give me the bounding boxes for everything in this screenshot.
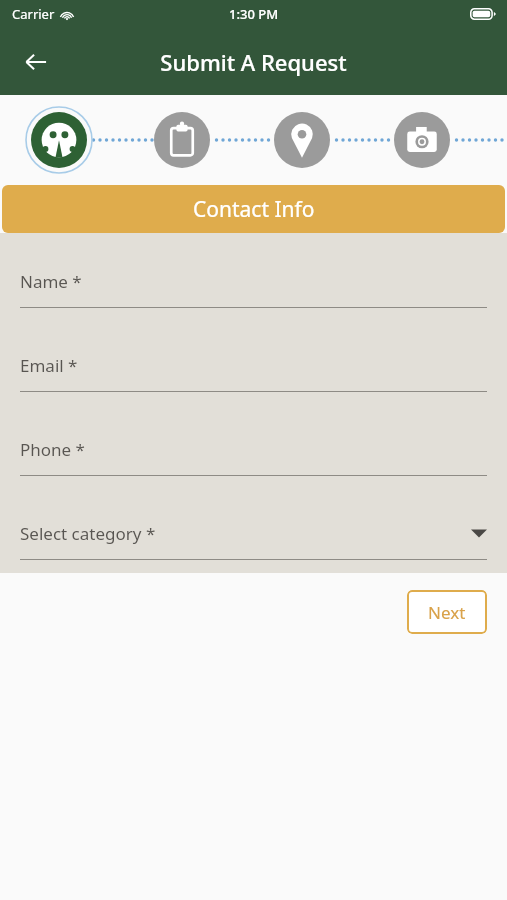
button[interactable]: Contact step <box>31 112 87 168</box>
staticText: Carrier <box>12 5 55 23</box>
staticText: Select category * <box>20 522 156 545</box>
button[interactable]: Select category * <box>20 507 487 573</box>
staticText: Name * <box>20 270 82 293</box>
staticText: Phone * <box>20 438 85 461</box>
button[interactable]: Back <box>12 38 60 86</box>
button[interactable]: Phone * <box>20 423 487 507</box>
button[interactable]: Next <box>407 590 487 634</box>
staticText: Contact Info <box>193 195 315 224</box>
staticText: 1:30 PM <box>229 5 279 23</box>
button[interactable]: Name * <box>20 255 487 339</box>
button[interactable]: Details step <box>210 112 266 168</box>
staticText: Next <box>428 601 466 624</box>
button[interactable]: Contact Info <box>2 185 505 233</box>
button[interactable]: Location step <box>386 112 442 168</box>
staticText: Email * <box>20 354 78 377</box>
staticText: Submit A Request <box>160 47 347 77</box>
button[interactable]: Email * <box>20 339 487 423</box>
